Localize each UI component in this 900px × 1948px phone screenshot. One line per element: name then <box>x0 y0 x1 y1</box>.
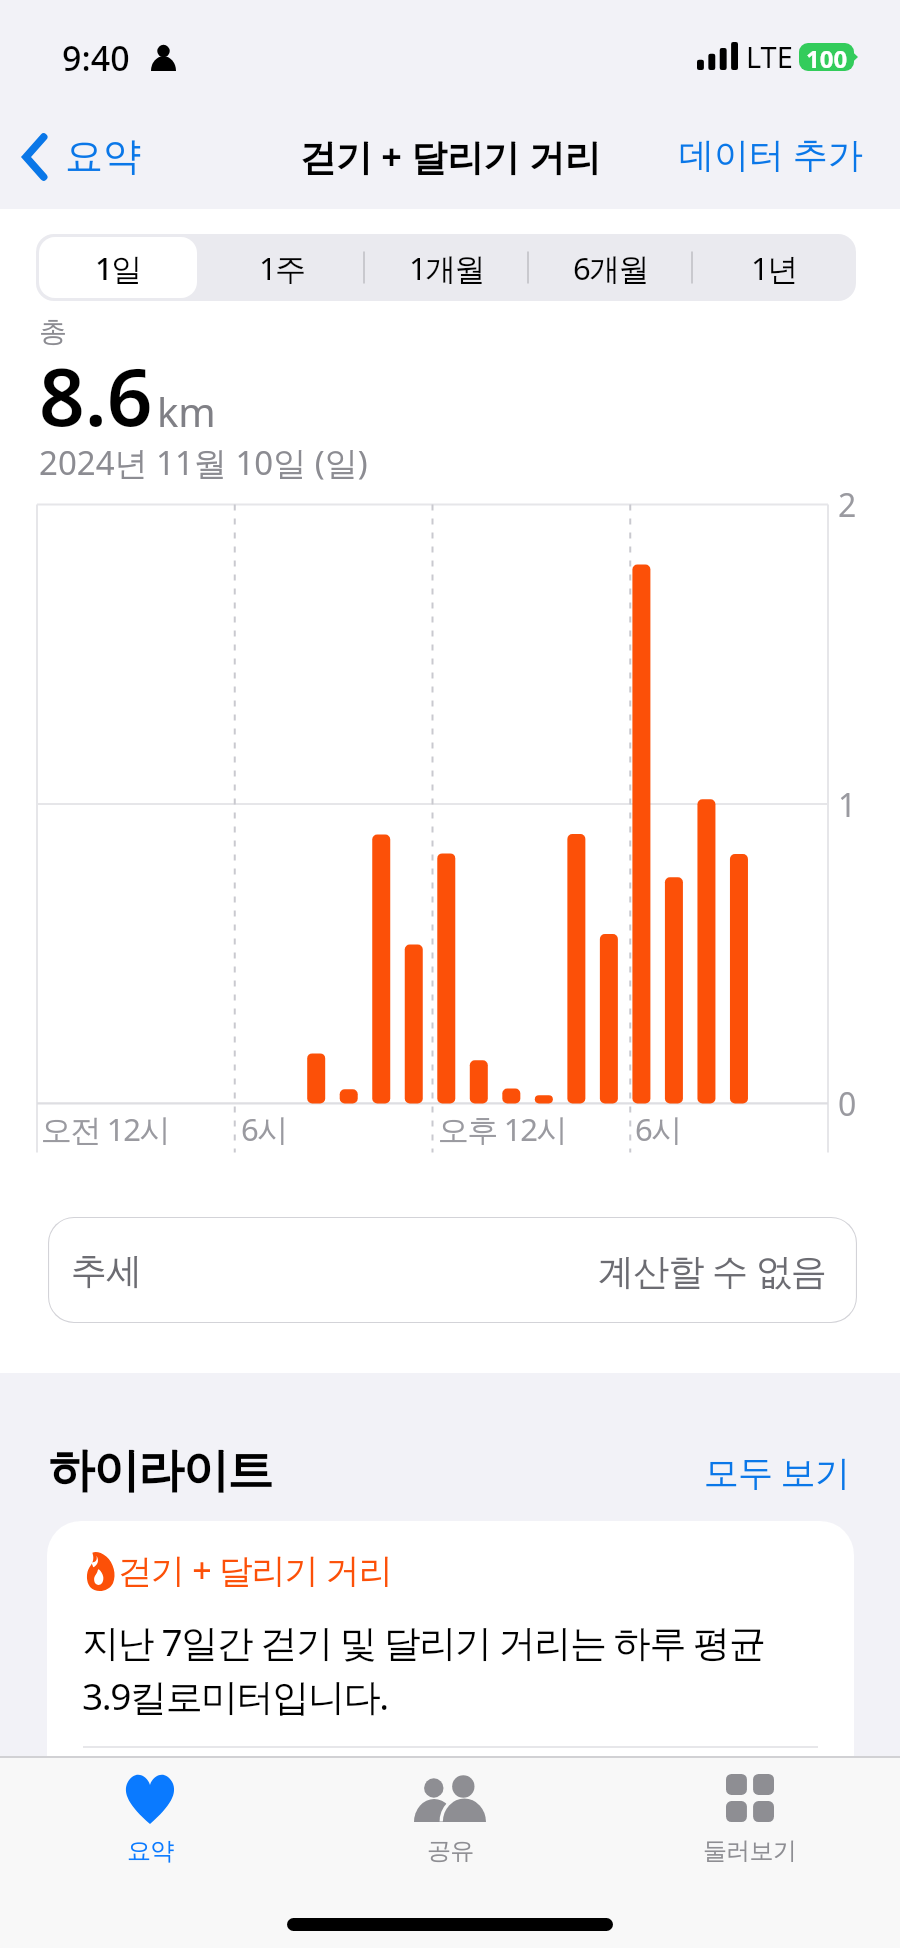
staticText: 9:40 <box>62 35 130 81</box>
staticText: 8.6 <box>39 340 153 449</box>
staticText: 1개월 <box>409 247 484 289</box>
staticText: 1년 <box>751 247 797 289</box>
staticText: LTE <box>746 37 793 76</box>
button[interactable]: 걷기 + 달리기 거리 <box>47 1521 854 1821</box>
staticText: 모두 보기 <box>704 1448 850 1496</box>
staticText: 계산할 수 없음 <box>598 1246 827 1295</box>
staticText: 둘러보기 <box>703 1836 797 1866</box>
other: 둘러보기 <box>726 1774 774 1822</box>
staticText: 공유 <box>427 1836 474 1866</box>
staticText: km <box>157 384 216 438</box>
staticText: 지난 7일간 걷기 및 달리기 거리는 하루 평균 3.9킬로미터입니다. <box>82 1616 765 1721</box>
button[interactable]: 요약 <box>14 124 151 190</box>
button[interactable]: 1년 <box>695 237 853 298</box>
staticText: 걷기 + 달리기 거리 <box>300 132 601 181</box>
staticText: 6시 <box>241 1108 287 1150</box>
staticText: 2 <box>838 483 857 527</box>
button[interactable]: 공유 <box>300 1756 600 1886</box>
other: 요약 <box>123 1774 177 1824</box>
staticText: 1일 <box>95 247 141 289</box>
button[interactable]: 1개월 <box>367 237 525 298</box>
button[interactable]: 모두 보기 <box>704 1448 850 1496</box>
staticText: 추세 <box>71 1248 142 1293</box>
staticText: 6개월 <box>573 247 648 289</box>
button[interactable]: 1일 <box>39 237 197 298</box>
staticText: 1 <box>838 783 857 827</box>
button[interactable]: 둘러보기 <box>600 1756 900 1886</box>
staticText: 6시 <box>635 1108 681 1150</box>
other: 공유 <box>414 1774 486 1824</box>
staticText: 요약 <box>65 132 141 180</box>
button[interactable]: 6개월 <box>531 237 689 298</box>
staticText: 요약 <box>127 1836 174 1866</box>
staticText: 2024년 11월 10일 (일) <box>39 440 368 485</box>
staticText: 데이터 추가 <box>679 130 864 178</box>
staticText: 0 <box>838 1082 857 1126</box>
staticText: 총 <box>39 314 67 349</box>
button[interactable]: 1주 <box>203 237 361 298</box>
staticText: 걷기 + 달리기 거리 <box>118 1547 393 1593</box>
staticText: 하이라이트 <box>49 1442 273 1500</box>
staticText: 오후 12시 <box>438 1108 567 1150</box>
button[interactable]: 요약 <box>0 1756 300 1886</box>
button[interactable]: 추세 <box>48 1217 857 1323</box>
staticText: 1주 <box>259 247 305 289</box>
staticText: 오전 12시 <box>41 1108 170 1150</box>
staticText: 100 <box>806 43 848 70</box>
button[interactable]: 데이터 추가 <box>671 120 872 188</box>
